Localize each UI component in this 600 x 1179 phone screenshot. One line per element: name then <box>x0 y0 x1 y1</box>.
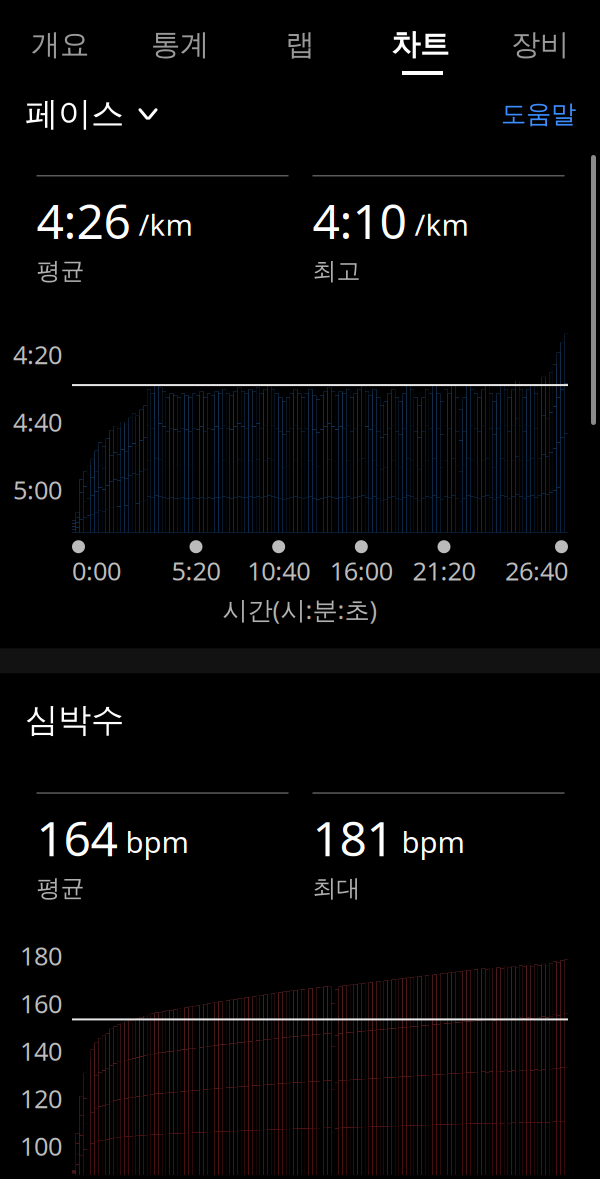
staticText: 시간(시:분:초) <box>222 593 377 626</box>
staticText: 10:40 <box>247 554 310 587</box>
staticText: 차트 <box>391 26 449 62</box>
button[interactable]: 차트 <box>360 2 480 87</box>
staticText: bpm <box>125 822 188 861</box>
staticText: 5:20 <box>171 554 220 587</box>
staticText: 4:26 <box>36 188 130 252</box>
staticText: 16:00 <box>330 554 393 587</box>
staticText: 통계 <box>151 26 209 62</box>
staticText: 0:00 <box>72 554 121 587</box>
staticText: 21:20 <box>412 554 475 587</box>
staticText: /km <box>138 205 192 244</box>
button[interactable]: 장비 <box>480 2 600 87</box>
staticText: 도움말 <box>501 98 576 129</box>
staticText: /km <box>414 205 468 244</box>
staticText: 랩 <box>285 26 314 62</box>
button[interactable]: 통계 <box>120 2 240 87</box>
staticText: 4:10 <box>312 188 406 252</box>
button[interactable]: 개요 <box>0 2 120 87</box>
staticText: 최고 <box>312 256 360 286</box>
staticText: 최대 <box>312 873 360 903</box>
staticText: 181 <box>312 806 393 869</box>
staticText: 개요 <box>31 26 89 62</box>
staticText: 120 <box>20 1082 62 1115</box>
staticText: bpm <box>401 822 464 861</box>
staticText: 26:40 <box>505 554 568 587</box>
staticText: 4:40 <box>13 405 62 439</box>
staticText: 140 <box>20 1034 62 1068</box>
staticText: 심박수 <box>25 699 124 740</box>
staticText: 5:00 <box>13 473 62 506</box>
button[interactable]: 도움말 <box>477 90 600 137</box>
staticText: 4:20 <box>13 337 62 371</box>
staticText: 페이스 <box>25 93 124 134</box>
staticText: 평균 <box>36 873 84 903</box>
staticText: 100 <box>20 1129 62 1163</box>
staticText: 164 <box>36 806 117 869</box>
staticText: 평균 <box>36 256 84 286</box>
staticText: 160 <box>20 986 62 1020</box>
staticText: 장비 <box>511 26 569 62</box>
staticText: 180 <box>20 939 62 973</box>
button[interactable]: 랩 <box>240 2 360 87</box>
button[interactable]: 페이스 <box>0 87 183 140</box>
